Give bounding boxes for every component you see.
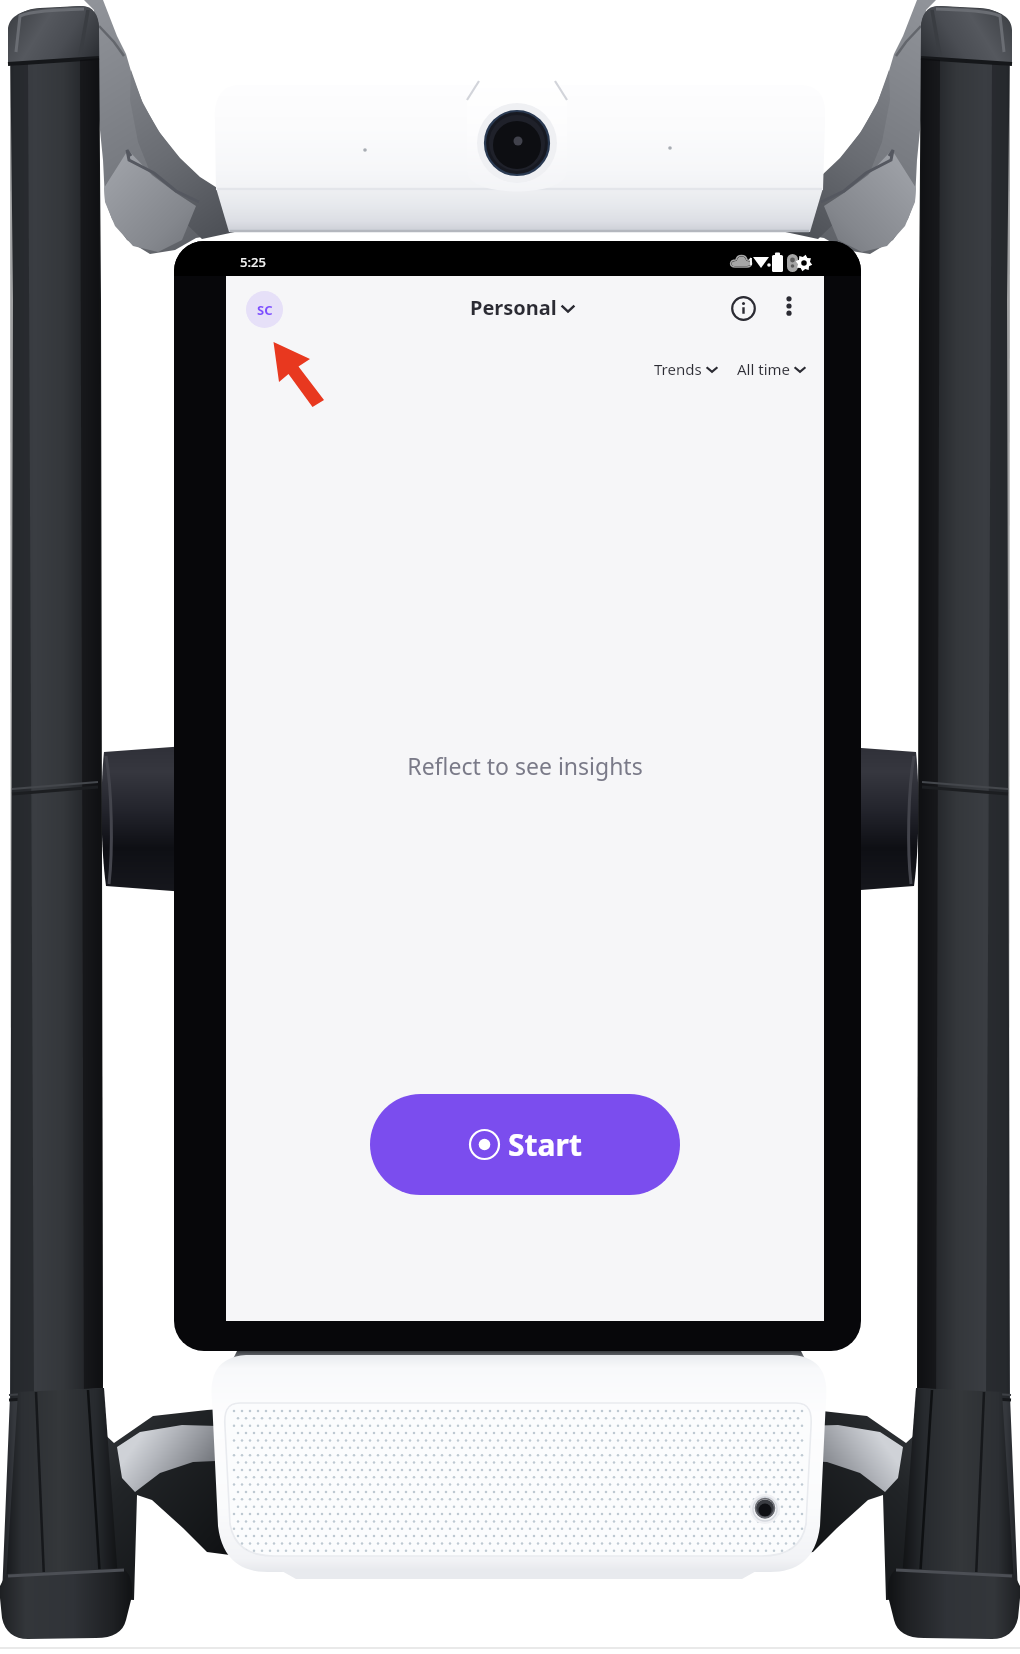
button[interactable]: Personal: [470, 294, 578, 321]
staticText: Reflect to see insights: [226, 750, 824, 781]
button[interactable]: Start: [370, 1094, 680, 1195]
staticText: All time: [737, 359, 790, 379]
staticText: Start: [508, 1124, 582, 1165]
button[interactable]: All time: [737, 359, 809, 379]
button[interactable]: Account: [246, 291, 283, 328]
staticText: Trends: [654, 359, 702, 379]
button[interactable]: Info: [723, 288, 763, 328]
button[interactable]: More options: [771, 288, 807, 324]
button[interactable]: Trends: [654, 359, 721, 379]
staticText: Personal: [470, 294, 557, 321]
staticText: SC: [257, 301, 273, 319]
staticText: 5:25: [240, 253, 266, 271]
